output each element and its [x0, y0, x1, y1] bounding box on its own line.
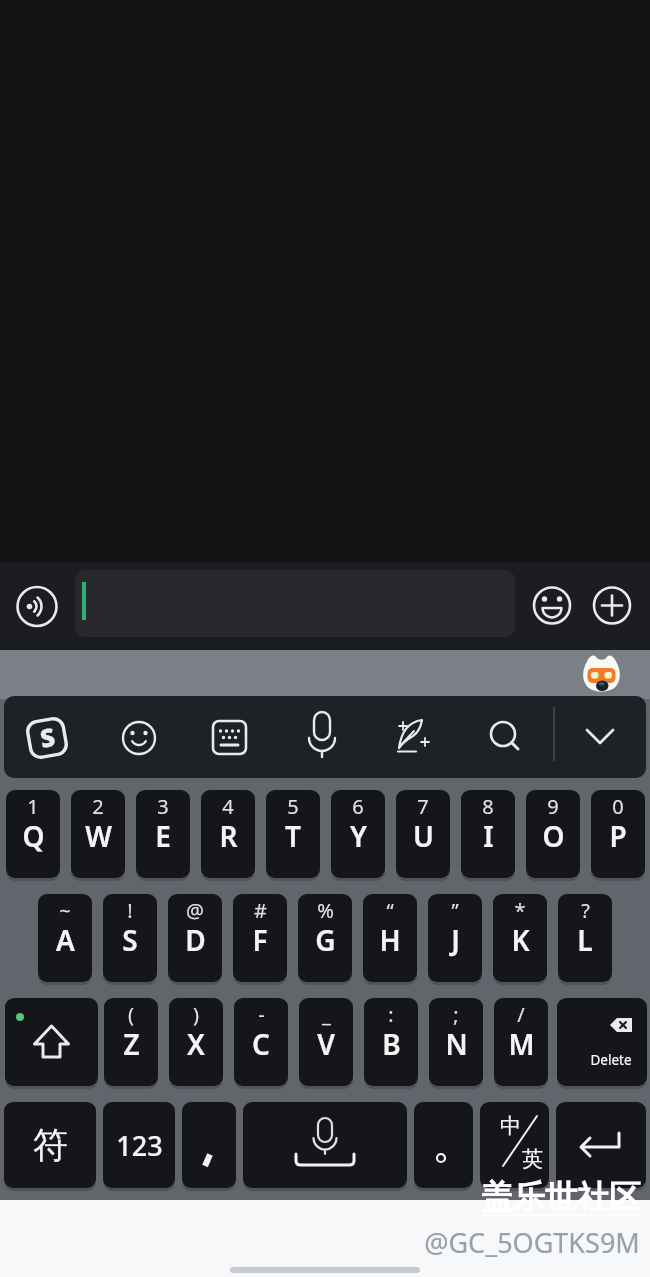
staticText: 0	[612, 793, 624, 820]
staticText: /	[517, 1001, 525, 1028]
staticText: *	[514, 897, 526, 924]
staticText: I	[483, 817, 494, 855]
staticText: 3	[157, 793, 169, 820]
staticText: D	[185, 921, 206, 959]
staticText: L	[577, 921, 593, 959]
staticText: K	[511, 921, 530, 959]
staticText: H	[379, 921, 401, 959]
staticText: ~	[59, 897, 71, 924]
staticText: 8	[482, 793, 494, 820]
staticText: A	[56, 921, 75, 959]
staticText: (	[128, 1001, 134, 1028]
staticText: F	[252, 921, 268, 959]
staticText: U	[413, 817, 434, 855]
staticText: “	[386, 897, 394, 924]
staticText: M	[508, 1025, 535, 1063]
staticText: X	[187, 1025, 205, 1063]
staticText: 2	[92, 793, 104, 820]
staticText: :	[388, 1001, 394, 1028]
staticText: !	[127, 897, 133, 924]
staticText: G	[315, 921, 336, 959]
staticText: ”	[451, 897, 459, 924]
staticText: S	[37, 719, 58, 755]
staticText: -	[258, 1001, 265, 1028]
staticText: 123	[116, 1127, 163, 1164]
staticText: V	[317, 1025, 335, 1063]
staticText: )	[193, 1001, 199, 1028]
staticText: J	[451, 921, 460, 959]
staticText: @GC_5OGTKS9M	[424, 1224, 640, 1261]
staticText: 4	[222, 793, 234, 820]
staticText: 英	[522, 1146, 543, 1172]
staticText: _	[322, 1001, 331, 1028]
staticText: @	[186, 897, 204, 924]
staticText: ;	[453, 1001, 459, 1028]
staticText: 符	[33, 1123, 68, 1167]
staticText: ?	[581, 897, 590, 924]
staticText: 中	[500, 1113, 521, 1139]
staticText: E	[155, 817, 171, 855]
staticText: N	[445, 1025, 468, 1063]
staticText: R	[219, 817, 238, 855]
staticText: T	[285, 817, 301, 855]
staticText: C	[252, 1025, 270, 1063]
staticText: Q	[22, 817, 45, 855]
staticText: 5	[287, 793, 299, 820]
staticText: B	[382, 1025, 401, 1063]
staticText: 9	[547, 793, 559, 820]
staticText: 盖乐世社区	[481, 1177, 641, 1217]
staticText: Delete	[590, 1051, 632, 1069]
staticText: 6	[352, 793, 364, 820]
staticText: #	[254, 897, 267, 924]
staticText: 7	[417, 793, 429, 820]
staticText: 1	[27, 793, 39, 820]
staticText: Z	[123, 1025, 140, 1063]
staticText: Y	[350, 817, 367, 855]
staticText: S	[122, 921, 138, 959]
staticText: O	[542, 817, 565, 855]
staticText: P	[609, 817, 627, 855]
staticText: W	[85, 817, 112, 855]
staticText: %	[317, 897, 334, 924]
